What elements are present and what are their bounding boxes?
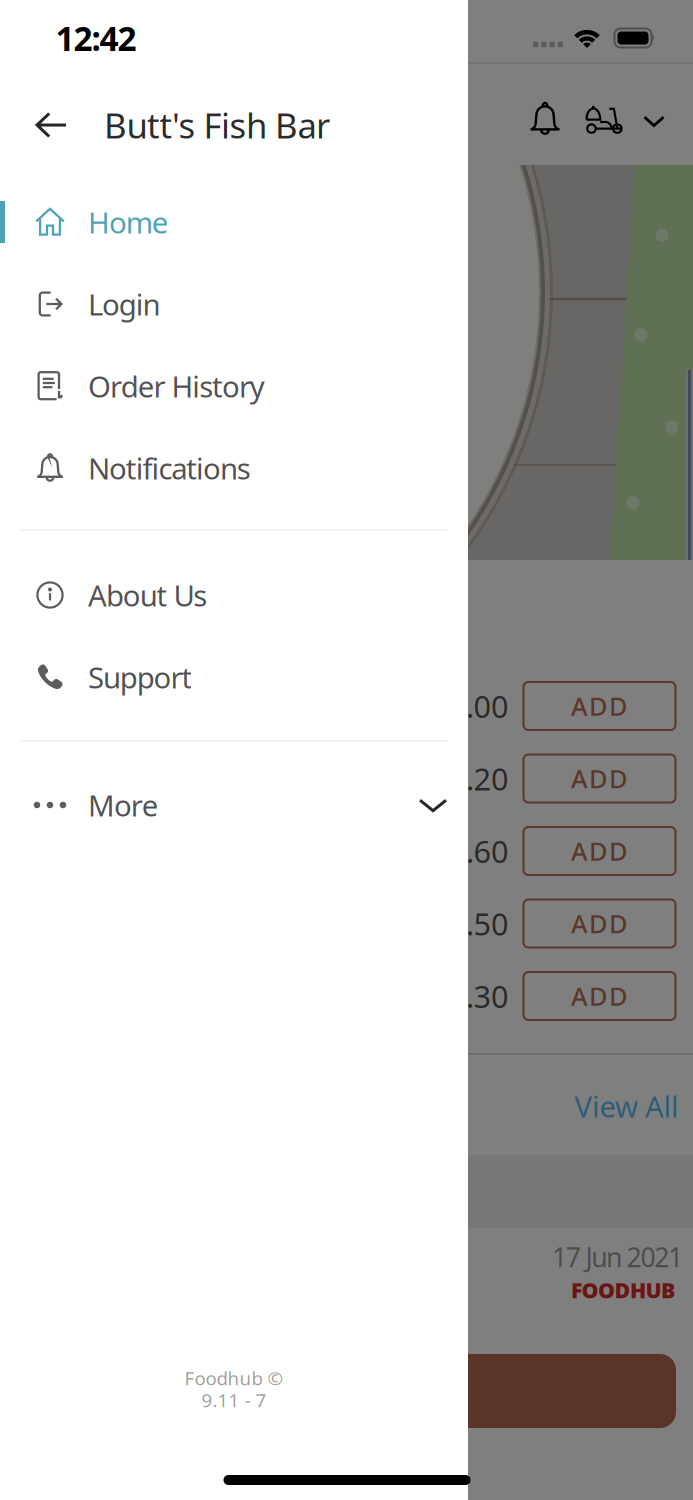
staticText: View All <box>574 1086 679 1125</box>
staticText: Order History <box>88 366 265 405</box>
button[interactable]: Login <box>0 263 468 345</box>
staticText: About Us <box>88 575 207 614</box>
button[interactable]: More options <box>644 115 663 127</box>
staticText: Foodhub © <box>184 1366 283 1390</box>
staticText: 9.11 - 7 <box>201 1388 266 1412</box>
button[interactable]: Support <box>0 636 468 718</box>
staticText: FOODHUB <box>571 1276 675 1304</box>
button[interactable]: More <box>0 764 468 846</box>
button[interactable]: ADD <box>523 754 675 802</box>
staticText: Login <box>88 284 161 323</box>
staticText: ADD <box>571 689 628 723</box>
button[interactable]: ADD <box>523 827 675 875</box>
button[interactable]: ADD <box>523 682 675 730</box>
button[interactable]: View basket <box>17 1354 676 1428</box>
staticText: 3.20 <box>448 758 509 799</box>
staticText: ADD <box>571 979 628 1013</box>
button[interactable]: ADD <box>523 899 675 947</box>
staticText: More <box>88 785 159 824</box>
staticText: 17 Jun 2021 <box>552 1239 683 1275</box>
staticText: ADD <box>571 834 628 868</box>
button[interactable]: Notifications <box>527 99 563 139</box>
staticText: Notifications <box>88 448 251 487</box>
button[interactable]: Order History <box>0 345 468 427</box>
button[interactable]: View All <box>479 1086 679 1125</box>
staticText: 3.50 <box>448 903 509 944</box>
staticText: 5.00 <box>448 686 509 726</box>
staticText: ADD <box>571 907 628 940</box>
button[interactable]: Delivery <box>585 104 623 134</box>
button[interactable]: Home <box>0 181 468 263</box>
button[interactable]: ADD <box>523 972 675 1020</box>
button[interactable]: Back <box>37 113 66 136</box>
staticText: Home <box>88 202 169 241</box>
button[interactable]: Notifications <box>0 427 468 509</box>
button[interactable]: About Us <box>0 554 468 636</box>
staticText: 5.30 <box>448 976 509 1016</box>
staticText: Support <box>88 657 192 696</box>
staticText: ADD <box>571 762 628 795</box>
staticText: 3.60 <box>448 831 509 871</box>
staticText: 12:42 <box>55 16 136 60</box>
staticText: Butt's Fish Bar <box>104 102 330 148</box>
